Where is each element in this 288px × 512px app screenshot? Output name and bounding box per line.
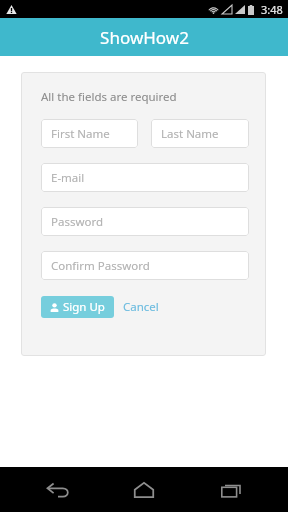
button[interactable]: Back [29, 467, 87, 512]
button[interactable]: Confirm Password [41, 251, 249, 280]
staticText: ShowHow2 [100, 26, 189, 49]
button[interactable]: Password [41, 207, 249, 236]
staticText: All the fields are required [41, 89, 177, 105]
button[interactable]: Recent apps [202, 467, 260, 512]
button[interactable]: Home [115, 467, 173, 512]
button[interactable]: Last Name [151, 119, 249, 148]
button[interactable]: E-mail [41, 163, 249, 192]
staticText: Last Name [161, 126, 219, 142]
staticText: Confirm Password [51, 258, 150, 274]
staticText: Cancel [123, 299, 159, 315]
staticText: E-mail [51, 170, 85, 186]
button[interactable]: First Name [41, 119, 138, 148]
staticText: Password [51, 214, 104, 230]
button[interactable]: Sign Up [41, 296, 114, 318]
button[interactable]: Cancel [123, 299, 159, 315]
staticText: First Name [51, 126, 110, 142]
staticText: Sign Up [63, 299, 105, 315]
staticText: 3:48 [261, 2, 283, 17]
